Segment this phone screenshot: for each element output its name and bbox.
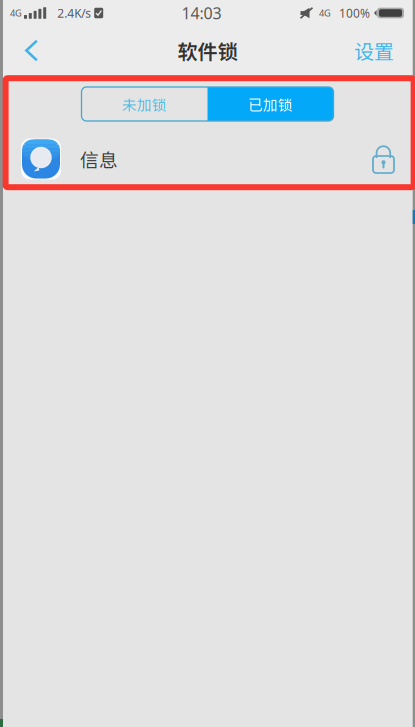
staticText: 4G <box>10 7 22 19</box>
staticText: 4G <box>319 7 331 19</box>
staticText: 100% <box>339 5 370 21</box>
staticText: 软件锁 <box>177 36 237 65</box>
button[interactable]: Back <box>0 26 54 75</box>
button[interactable]: 信息 <box>0 136 415 182</box>
button[interactable]: 未加锁 <box>81 87 207 121</box>
button[interactable]: 已加锁 <box>207 87 333 121</box>
staticText: 信息 <box>80 145 118 172</box>
staticText: 设置 <box>354 36 394 65</box>
staticText: 未加锁 <box>122 93 167 115</box>
staticText: 14:03 <box>182 2 222 24</box>
staticText: 已加锁 <box>248 93 293 115</box>
staticText: 2.4K/s <box>57 5 91 21</box>
button[interactable]: 设置 <box>344 26 404 75</box>
